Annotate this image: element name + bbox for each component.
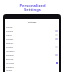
button[interactable]: Account: [5, 61, 59, 65]
button[interactable]: Storage: [5, 53, 59, 57]
button[interactable]: Support: [5, 65, 59, 69]
button[interactable]: About: [5, 69, 59, 72]
staticText: Theme: [6, 30, 13, 33]
staticText: About: [6, 69, 13, 72]
staticText: Sounds: [6, 38, 14, 41]
staticText: Settings: [28, 21, 37, 24]
staticText: Backup: [6, 58, 14, 61]
staticText: Personalized Settings: [19, 3, 46, 13]
button[interactable]: Network: [5, 49, 59, 53]
button[interactable]: Alerts: [5, 33, 59, 37]
staticText: Privacy: [6, 46, 14, 49]
staticText: Alerts: [6, 34, 12, 37]
button[interactable]: Backup: [5, 57, 59, 61]
staticText: Profile: [6, 26, 13, 29]
staticText: Storage: [6, 54, 14, 57]
button[interactable]: Profile: [5, 25, 59, 29]
staticText: Support: [6, 66, 15, 69]
staticText: Display: [6, 42, 14, 45]
staticText: Network: [6, 50, 15, 53]
button[interactable]: Sounds: [5, 37, 59, 41]
staticText: Account: [6, 62, 15, 65]
button[interactable]: Theme: [5, 29, 59, 33]
button[interactable]: Display: [5, 41, 59, 45]
button[interactable]: Privacy: [5, 45, 59, 49]
